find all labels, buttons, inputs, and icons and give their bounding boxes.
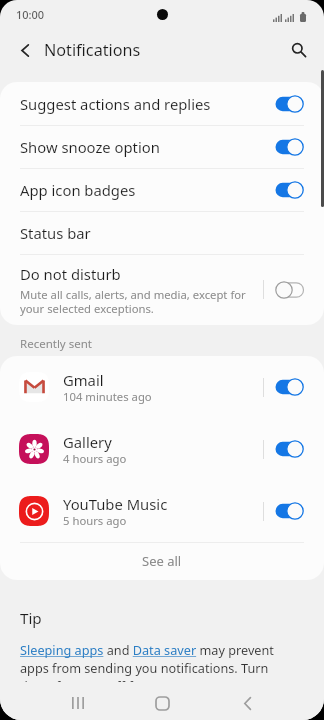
- staticText: Tip: [20, 608, 42, 629]
- staticText: 104 minutes ago: [63, 389, 152, 404]
- button[interactable]: [275, 378, 304, 396]
- button[interactable]: [275, 138, 304, 156]
- staticText: App icon badges: [20, 180, 275, 200]
- button[interactable]: Back: [225, 684, 269, 720]
- staticText: 4 hours ago: [63, 451, 127, 466]
- button[interactable]: [275, 440, 304, 458]
- staticText: Notifications: [44, 39, 141, 61]
- button[interactable]: Show snooze option: [0, 125, 324, 168]
- staticText: Recently sent: [20, 336, 92, 352]
- button[interactable]: App icon badges: [0, 168, 324, 211]
- staticText: Sleeping apps and Data saver may prevent…: [20, 641, 286, 713]
- staticText: Suggest actions and replies: [20, 94, 275, 114]
- button[interactable]: [275, 181, 304, 199]
- button[interactable]: Gmail: [0, 356, 324, 418]
- button[interactable]: Do not disturb: [0, 254, 324, 325]
- button[interactable]: Gallery: [0, 418, 324, 480]
- staticText: Show snooze option: [20, 137, 275, 157]
- staticText: Status bar: [20, 223, 91, 243]
- button[interactable]: See all: [0, 542, 324, 580]
- button[interactable]: Search: [273, 28, 324, 72]
- staticText: Gmail: [63, 370, 104, 390]
- staticText: 5 hours ago: [63, 513, 127, 528]
- staticText: Mute all calls, alerts, and media, excep…: [20, 287, 246, 316]
- button[interactable]: Suggest actions and replies: [0, 82, 324, 125]
- button[interactable]: Status bar: [0, 211, 324, 254]
- staticText: Gallery: [63, 432, 112, 452]
- staticText: 10:00: [16, 7, 45, 22]
- staticText: YouTube Music: [63, 494, 168, 514]
- staticText: See all: [142, 552, 182, 570]
- button[interactable]: [275, 502, 304, 520]
- button[interactable]: Recent apps: [56, 684, 100, 720]
- button[interactable]: Back: [0, 28, 50, 72]
- button[interactable]: [275, 281, 304, 299]
- staticText: Do not disturb: [20, 264, 121, 284]
- button[interactable]: YouTube Music: [0, 480, 324, 542]
- button[interactable]: Home: [140, 684, 184, 720]
- button[interactable]: [275, 95, 304, 113]
